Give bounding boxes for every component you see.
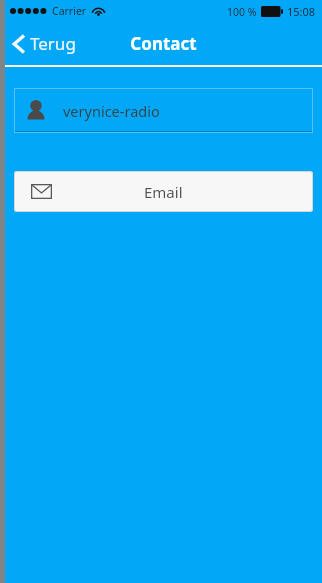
staticText: Terug [30,32,76,55]
button[interactable]: verynice-radio [14,88,313,133]
staticText: 100 % [227,5,257,19]
button[interactable]: Terug [5,22,86,65]
staticText: Contact [130,32,197,55]
button[interactable]: Email [14,171,313,212]
staticText: Email [144,182,183,202]
staticText: Carrier [52,4,87,18]
staticText: verynice-radio [63,101,160,121]
staticText: 15:08 [287,4,316,19]
